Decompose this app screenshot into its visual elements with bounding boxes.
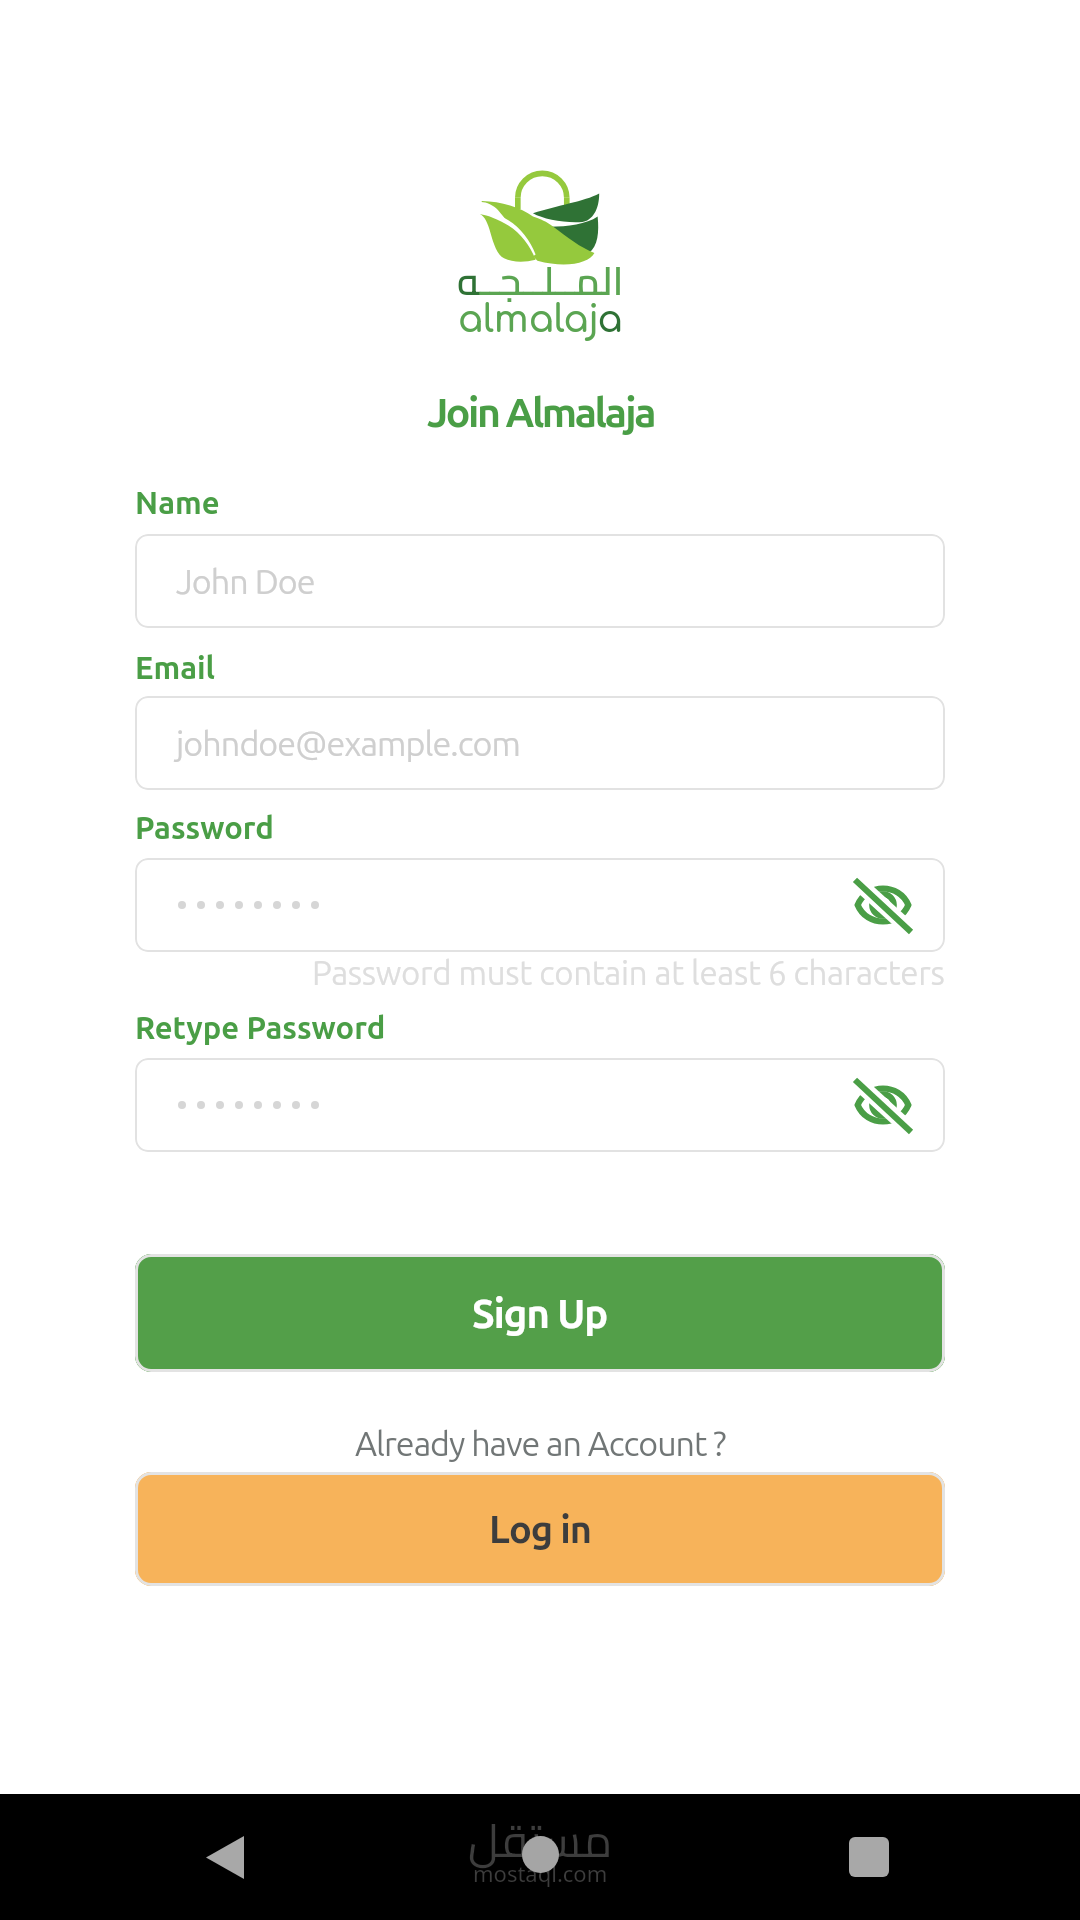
staticText: Log in — [489, 1508, 591, 1551]
staticText: John Doe — [176, 562, 315, 600]
button[interactable]: Toggle password visibility — [135, 858, 945, 952]
staticText: Retype Password — [135, 1010, 386, 1045]
button[interactable]: Back — [177, 1809, 273, 1905]
button[interactable]: Toggle password visibility — [847, 1069, 919, 1141]
button[interactable]: Log in — [135, 1472, 945, 1586]
button[interactable]: John Doe — [135, 534, 945, 628]
button[interactable]: Sign Up — [135, 1254, 945, 1372]
staticText: Sign Up — [472, 1291, 608, 1336]
staticText: johndoe@example.com — [176, 724, 520, 762]
staticText: Email — [135, 650, 216, 685]
button[interactable]: Toggle password visibility — [847, 869, 919, 941]
staticText: المــلــجــه — [457, 244, 624, 317]
staticText: Name — [135, 485, 220, 520]
staticText: mostaql.com — [473, 1858, 608, 1888]
button[interactable]: Toggle password visibility — [135, 1058, 945, 1152]
button[interactable]: johndoe@example.com — [135, 696, 945, 790]
button[interactable]: Recent apps — [821, 1809, 917, 1905]
staticText: almalaja — [458, 299, 623, 340]
staticText: Password must contain at least 6 charact… — [312, 954, 945, 991]
staticText: Password — [135, 810, 274, 845]
staticText: مستقل — [468, 1797, 613, 1883]
staticText: Already have an Account ? — [355, 1424, 726, 1462]
staticText: Join Almalaja — [427, 389, 654, 435]
